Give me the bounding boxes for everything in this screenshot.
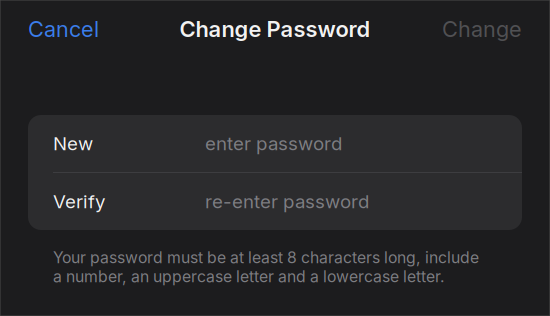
staticText: enter password <box>205 132 342 155</box>
staticText: Change <box>442 16 522 42</box>
button[interactable]: Cancel <box>28 16 99 42</box>
staticText: Change Password <box>179 16 370 42</box>
staticText: Verify <box>53 190 105 213</box>
staticText: Your password must be at least 8 charact… <box>53 248 479 286</box>
staticText: Cancel <box>28 16 99 42</box>
staticText: New <box>53 132 93 155</box>
button[interactable]: New <box>28 115 522 172</box>
button[interactable]: Change <box>442 16 522 42</box>
button[interactable]: Verify <box>28 173 522 230</box>
staticText: re-enter password <box>205 190 369 213</box>
